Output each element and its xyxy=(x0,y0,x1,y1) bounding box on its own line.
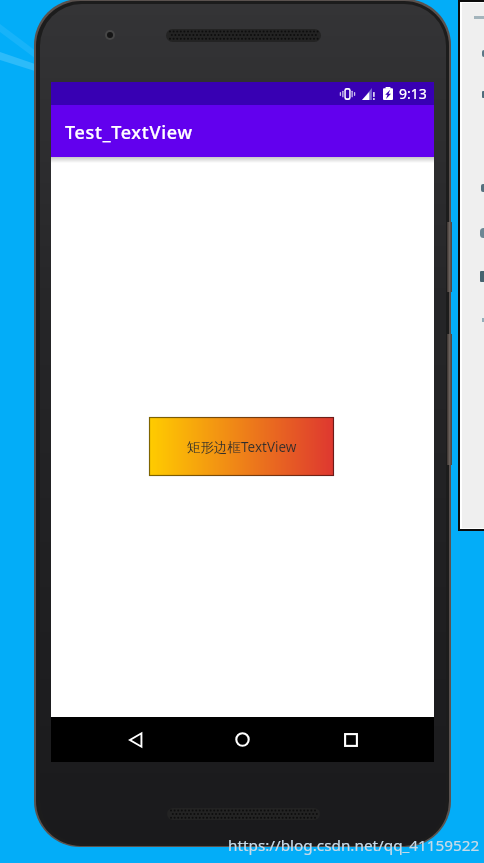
button[interactable]: Home xyxy=(233,730,252,749)
button[interactable]: Test_TextView xyxy=(51,105,434,157)
staticText: Test_TextView xyxy=(65,120,193,145)
button[interactable]: Back xyxy=(126,730,145,749)
button[interactable]: Recent apps xyxy=(341,730,360,749)
staticText: https://blog.csdn.net/qq_41159522 xyxy=(228,835,480,856)
button[interactable]: 矩形边框TextView xyxy=(149,417,334,476)
staticText: 矩形边框TextView xyxy=(187,438,297,456)
staticText: 9:13 xyxy=(399,84,427,103)
